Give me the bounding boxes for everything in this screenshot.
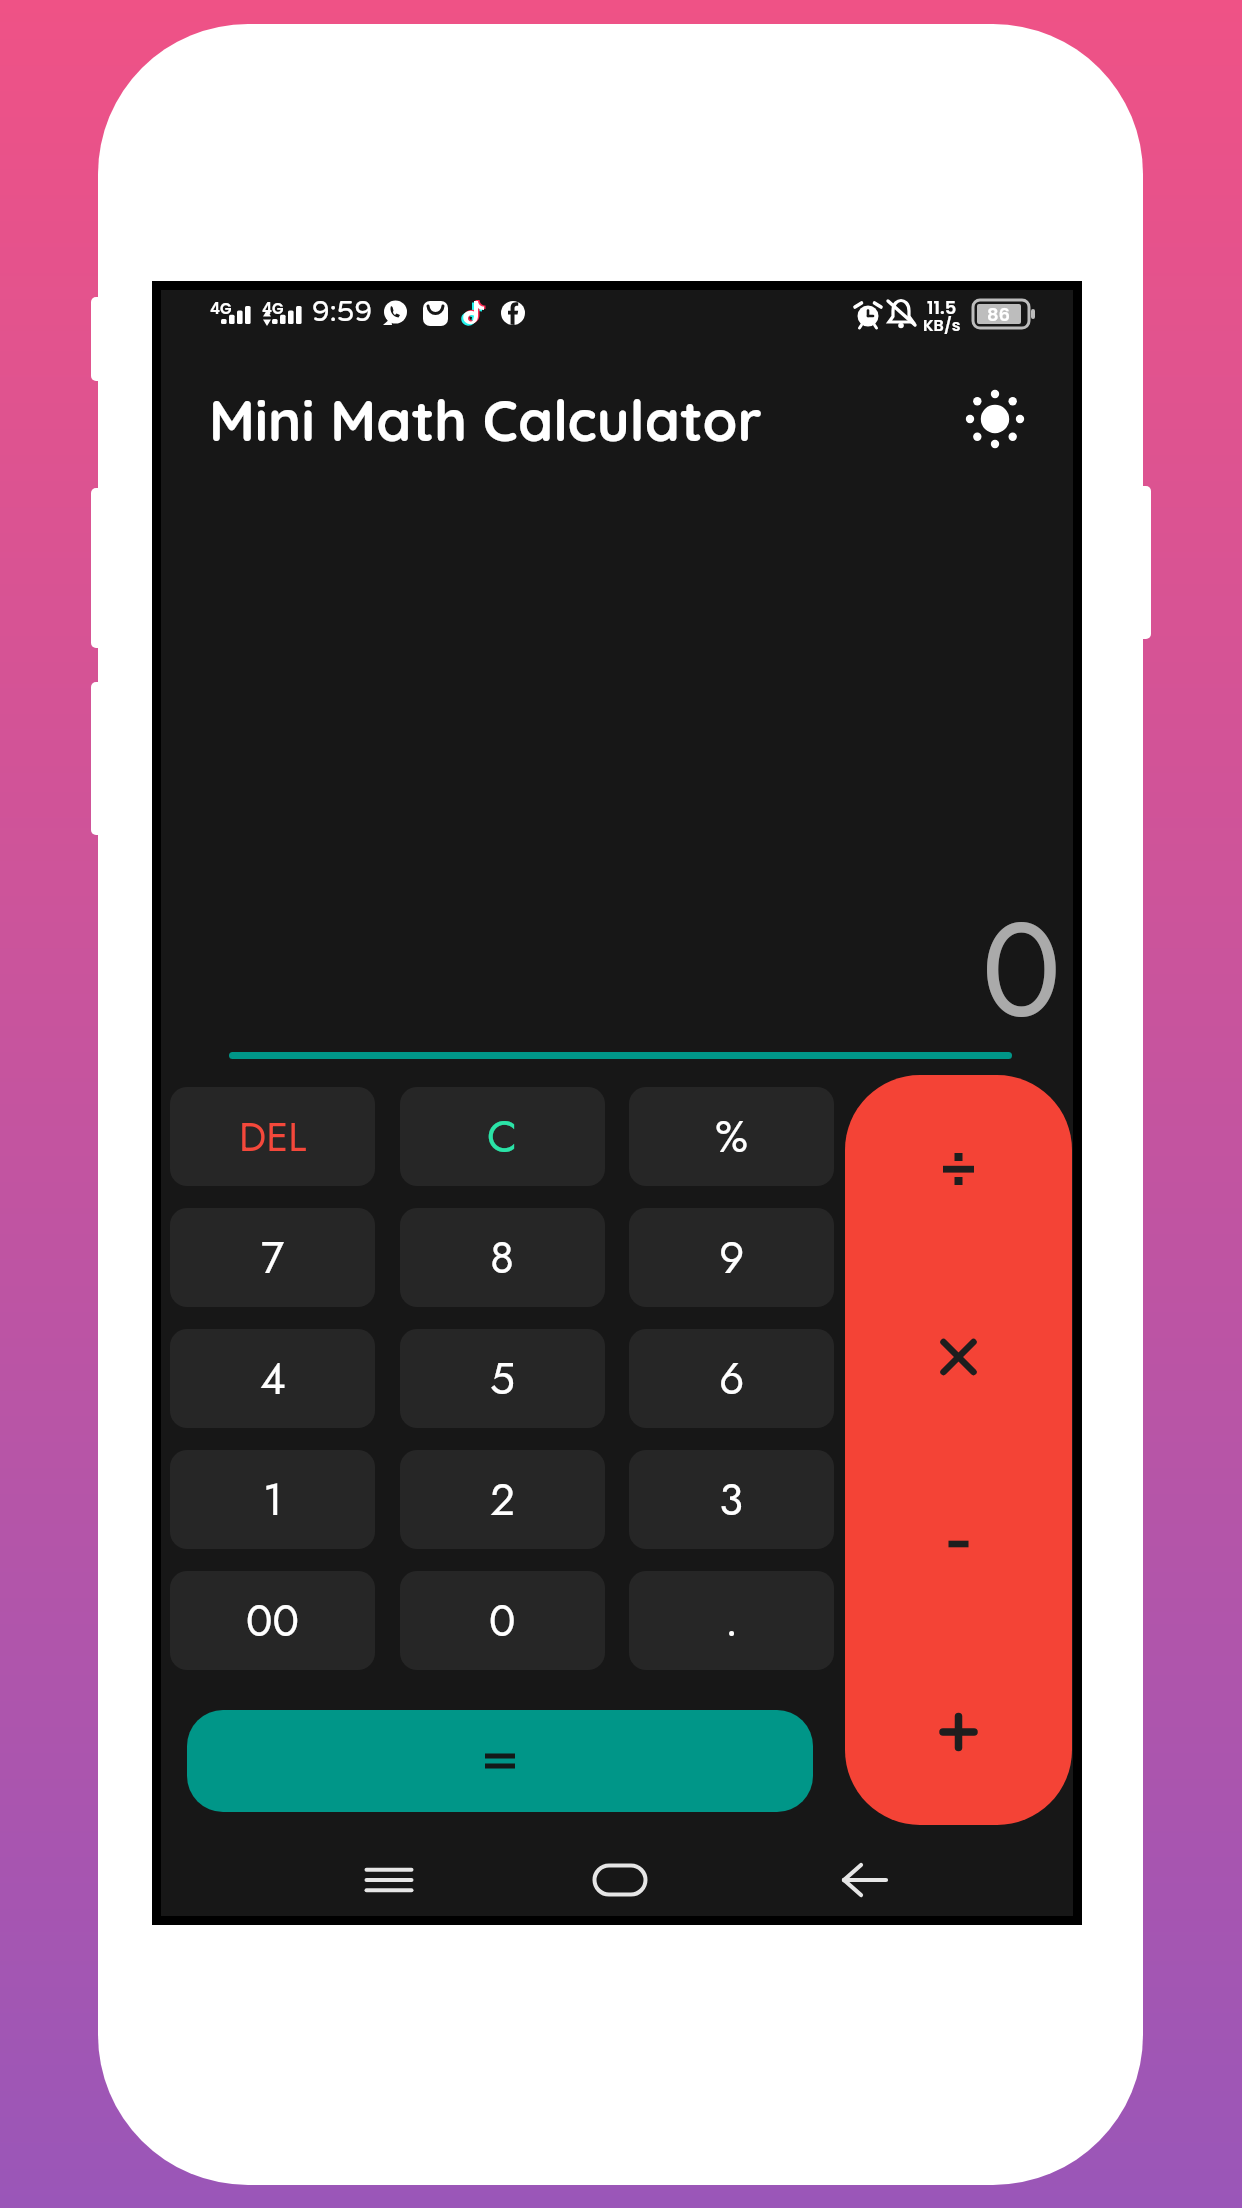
button[interactable]: Divide xyxy=(845,1075,1072,1263)
button[interactable]: C xyxy=(400,1087,605,1186)
staticText: . xyxy=(725,1589,739,1653)
staticText: 1 xyxy=(263,1468,283,1532)
button[interactable]: 8 xyxy=(400,1208,605,1307)
staticText: 00 xyxy=(246,1589,299,1653)
staticText: 7 xyxy=(261,1226,285,1290)
button[interactable]: Toggle brightness xyxy=(952,376,1038,462)
button[interactable]: 3 xyxy=(629,1450,834,1549)
button[interactable]: % xyxy=(629,1087,834,1186)
button[interactable]: 0 xyxy=(400,1571,605,1670)
button[interactable]: 7 xyxy=(170,1208,375,1307)
button[interactable]: DEL xyxy=(170,1087,375,1186)
button[interactable]: 2 xyxy=(400,1450,605,1549)
button[interactable]: Multiply xyxy=(845,1263,1072,1451)
button[interactable]: Subtract xyxy=(845,1450,1072,1638)
staticText: 4 xyxy=(260,1347,286,1411)
button[interactable]: Recent apps xyxy=(346,1837,432,1923)
staticText: 2 xyxy=(490,1468,516,1532)
staticText: 8 xyxy=(490,1226,515,1290)
staticText: 0 xyxy=(489,1589,516,1653)
button[interactable]: 6 xyxy=(629,1329,834,1428)
button[interactable]: 4 xyxy=(170,1329,375,1428)
button[interactable]: 5 xyxy=(400,1329,605,1428)
button[interactable]: 00 xyxy=(170,1571,375,1670)
staticText: 4G xyxy=(210,298,232,319)
button[interactable]: Home xyxy=(577,1837,663,1923)
staticText: 9 xyxy=(719,1226,745,1290)
staticText: KB/s xyxy=(923,314,961,336)
button[interactable]: Add xyxy=(845,1638,1072,1825)
button[interactable]: 1 xyxy=(170,1450,375,1549)
button[interactable]: 9 xyxy=(629,1208,834,1307)
staticText: 4G xyxy=(262,298,284,319)
button[interactable]: . xyxy=(629,1571,834,1670)
staticText: 86 xyxy=(987,302,1011,327)
staticText: % xyxy=(715,1105,749,1169)
button[interactable]: Back xyxy=(822,1837,908,1923)
staticText: Mini Math Calculator xyxy=(209,385,762,455)
staticText: 6 xyxy=(719,1347,745,1411)
staticText: 5 xyxy=(490,1347,515,1411)
button[interactable]: Equals xyxy=(187,1710,813,1812)
staticText: DEL xyxy=(239,1108,307,1166)
staticText: 0 xyxy=(149,875,1061,1066)
staticText: 3 xyxy=(719,1468,744,1532)
staticText: C xyxy=(487,1105,518,1169)
staticText: 11.5 xyxy=(927,295,957,320)
staticText: 9:59 xyxy=(312,295,373,329)
